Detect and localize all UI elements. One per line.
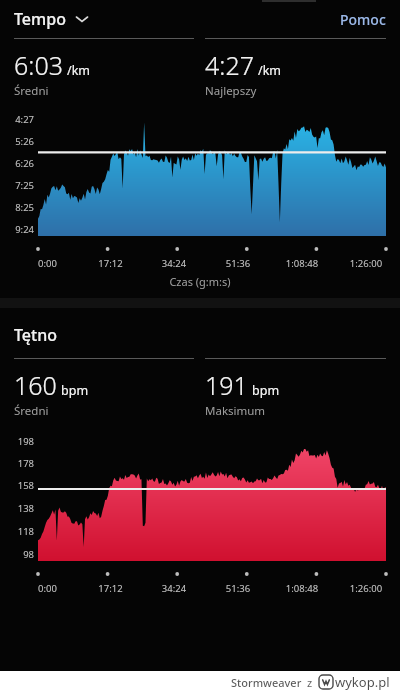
staticText: 1:26:00 [334,257,398,270]
staticText: 4:27 [2,113,34,126]
staticText: 7:25 [2,179,34,192]
staticText: 34:24 [142,582,206,595]
staticText: /km [67,62,91,79]
staticText: bpm [252,382,280,399]
staticText: 118 [2,525,34,538]
staticText: 6:03 [14,48,63,82]
staticText: Maksimum [205,403,266,419]
staticText: 1:26:00 [334,582,398,595]
button[interactable]: Tempo [14,8,92,30]
staticText: Średni [14,403,49,419]
staticText: 158 [2,479,34,492]
staticText: Najlepszy [205,83,257,99]
button[interactable]: 191 [205,358,386,419]
staticText: Czas (g:m:s) [0,274,400,289]
staticText: /km [258,62,282,79]
staticText: z [307,675,313,690]
staticText: 6:26 [2,157,34,170]
staticText: 178 [2,457,34,470]
staticText: Tempo [14,8,66,30]
staticText: 4:27 [205,48,254,82]
staticText: wykop.pl [335,673,390,691]
button[interactable]: Pomoc [340,10,386,29]
staticText: Pomoc [340,10,386,29]
staticText: 34:24 [142,257,206,270]
staticText: 51:36 [206,257,270,270]
staticText: 51:36 [206,582,270,595]
staticText: 9:24 [2,223,34,236]
staticText: 1:08:48 [270,257,334,270]
staticText: 198 [2,435,34,448]
staticText: bpm [61,382,89,399]
staticText: 191 [205,368,248,402]
staticText: Stormweaver [231,675,302,690]
staticText: Średni [14,83,49,99]
staticText: 138 [2,502,34,515]
staticText: 17:12 [79,582,142,595]
staticText: 0:00 [16,582,79,595]
staticText: Tętno [14,324,57,346]
staticText: 5:26 [2,135,34,148]
button[interactable]: 160 [14,358,194,419]
button[interactable]: 6:03 [14,38,194,99]
staticText: 98 [2,548,34,561]
staticText: 1:08:48 [270,582,334,595]
staticText: 160 [14,368,57,402]
button[interactable]: 4:27 [205,38,386,99]
staticText: 8:25 [2,201,34,214]
staticText: 17:12 [79,257,142,270]
staticText: 0:00 [16,257,79,270]
